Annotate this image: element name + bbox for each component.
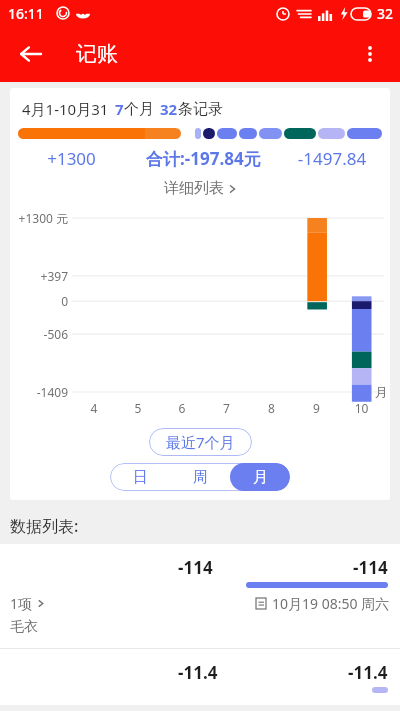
button[interactable]: 周: [170, 463, 230, 491]
staticText: 条记录: [178, 100, 223, 119]
staticText: 10: [339, 400, 384, 416]
staticText: 最近7个月: [166, 432, 235, 452]
staticText: 周: [193, 468, 208, 487]
staticText: -506: [12, 326, 68, 342]
staticText: -1409: [12, 384, 68, 400]
staticText: 7: [115, 99, 124, 119]
staticText: 0: [12, 293, 68, 309]
button[interactable]: 详细列表: [156, 177, 245, 200]
staticText: 记账: [76, 41, 118, 67]
staticText: -11.4: [348, 661, 388, 684]
staticText: 月: [375, 384, 388, 400]
button[interactable]: 1项: [10, 594, 45, 613]
staticText: 6: [160, 400, 204, 416]
staticText: +397: [12, 268, 68, 284]
staticText: 7: [204, 400, 249, 416]
button[interactable]: More options: [346, 30, 394, 78]
staticText: +1300 元: [12, 210, 68, 226]
staticText: -1497.84: [288, 147, 376, 170]
staticText: -114: [178, 556, 213, 579]
button[interactable]: 日: [110, 463, 170, 491]
staticText: -114: [353, 556, 388, 579]
button[interactable]: Back: [6, 30, 54, 78]
staticText: 16:11: [8, 4, 44, 23]
staticText: +1300: [24, 147, 119, 170]
staticText: 日: [133, 468, 148, 487]
staticText: 4: [72, 400, 116, 416]
staticText: 32: [160, 99, 178, 119]
staticText: 1项: [10, 594, 33, 613]
staticText: 10月19 08:50 周六: [272, 594, 390, 613]
staticText: 月: [253, 468, 268, 487]
button[interactable]: 最近7个月: [149, 428, 252, 456]
button[interactable]: -114: [0, 544, 400, 648]
staticText: 4月1-10月31: [22, 99, 109, 119]
staticText: 数据列表:: [10, 515, 79, 537]
button[interactable]: -11.4: [0, 649, 400, 705]
staticText: 毛衣: [10, 618, 38, 636]
staticText: 8: [249, 400, 294, 416]
staticText: 个月: [124, 100, 154, 119]
staticText: 合计:-197.84元: [146, 147, 261, 170]
button[interactable]: 月: [230, 463, 290, 491]
staticText: 详细列表: [164, 179, 224, 198]
staticText: -11.4: [178, 661, 218, 684]
staticText: 5: [116, 400, 160, 416]
staticText: 9: [294, 400, 339, 416]
staticText: 32: [377, 4, 394, 23]
